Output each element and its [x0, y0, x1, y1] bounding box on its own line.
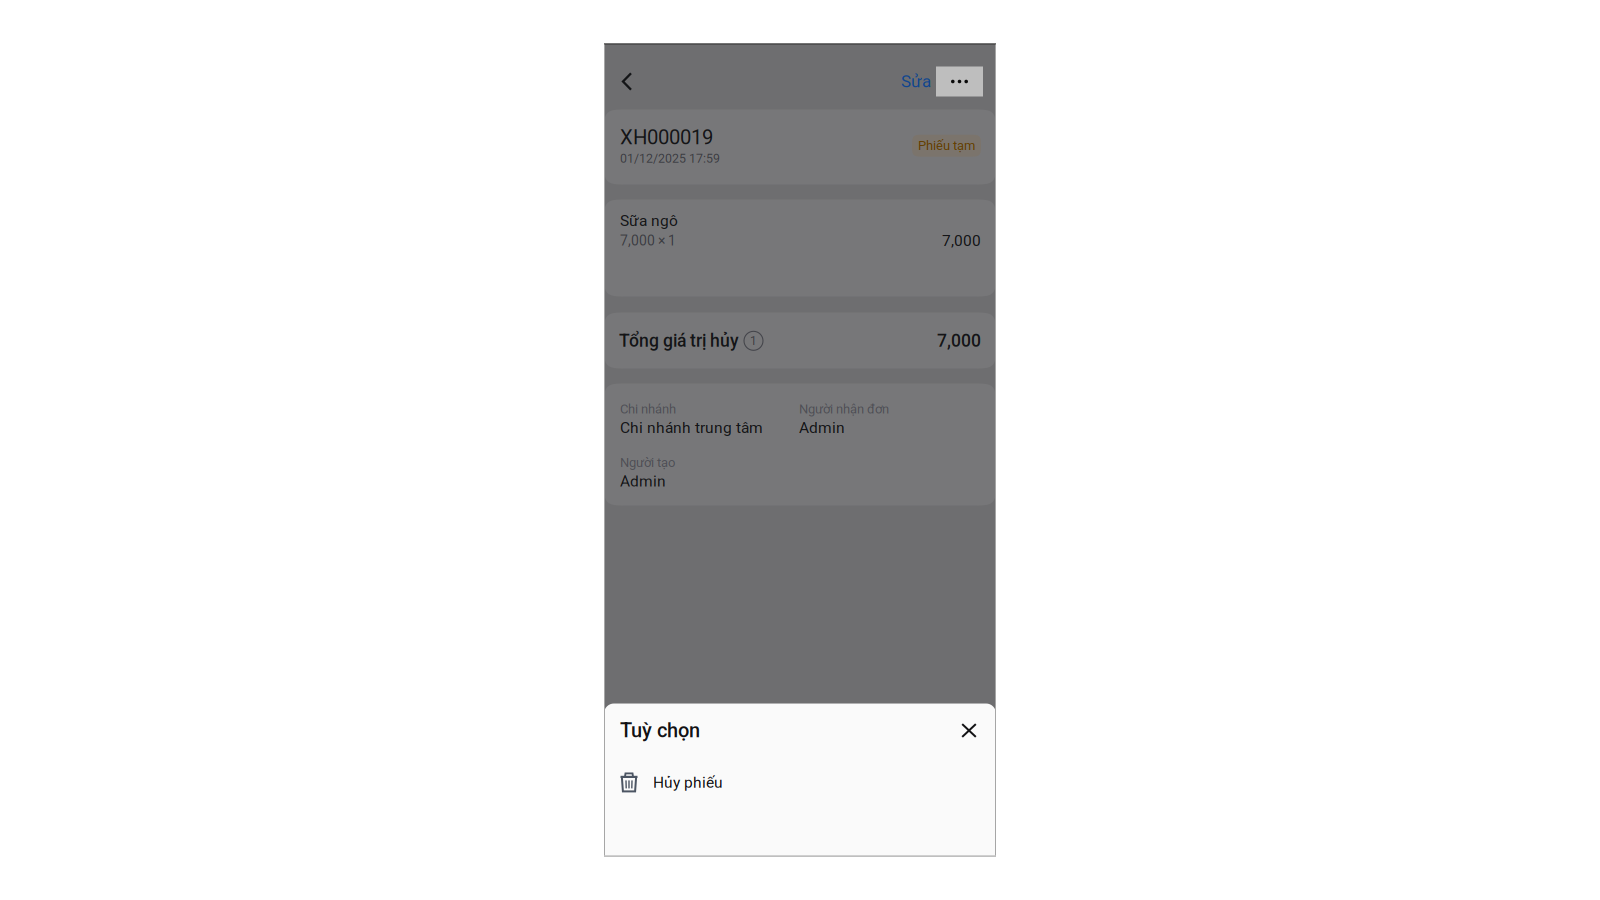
staticText: 1: [750, 334, 757, 348]
staticText: Chi nhánh: [620, 401, 676, 417]
button[interactable]: Close: [953, 714, 985, 746]
button[interactable]: More options: [936, 53, 983, 109]
staticText: Sửa: [901, 71, 931, 91]
staticText: Người tạo: [620, 455, 675, 470]
staticText: Admin: [799, 419, 845, 437]
staticText: Phiếu tạm: [918, 138, 975, 153]
staticText: Sữa ngô: [620, 211, 678, 230]
staticText: 7,000 × 1: [620, 232, 676, 249]
staticText: Người nhận đơn: [799, 401, 889, 417]
button[interactable]: Sửa: [901, 53, 931, 109]
staticText: Hủy phiếu: [653, 773, 723, 792]
staticText: Admin: [620, 472, 666, 490]
staticText: Tuỳ chọn: [620, 719, 700, 742]
button[interactable]: Back: [604, 53, 650, 109]
staticText: 7,000: [942, 232, 981, 250]
staticText: Tổng giá trị hủy: [619, 330, 739, 351]
staticText: 01/12/2025 17:59: [620, 151, 720, 166]
staticText: XH000019: [620, 125, 713, 149]
staticText: 7,000: [937, 330, 981, 351]
staticText: Chi nhánh trung tâm: [620, 419, 763, 437]
button[interactable]: Hủy phiếu: [604, 765, 996, 799]
